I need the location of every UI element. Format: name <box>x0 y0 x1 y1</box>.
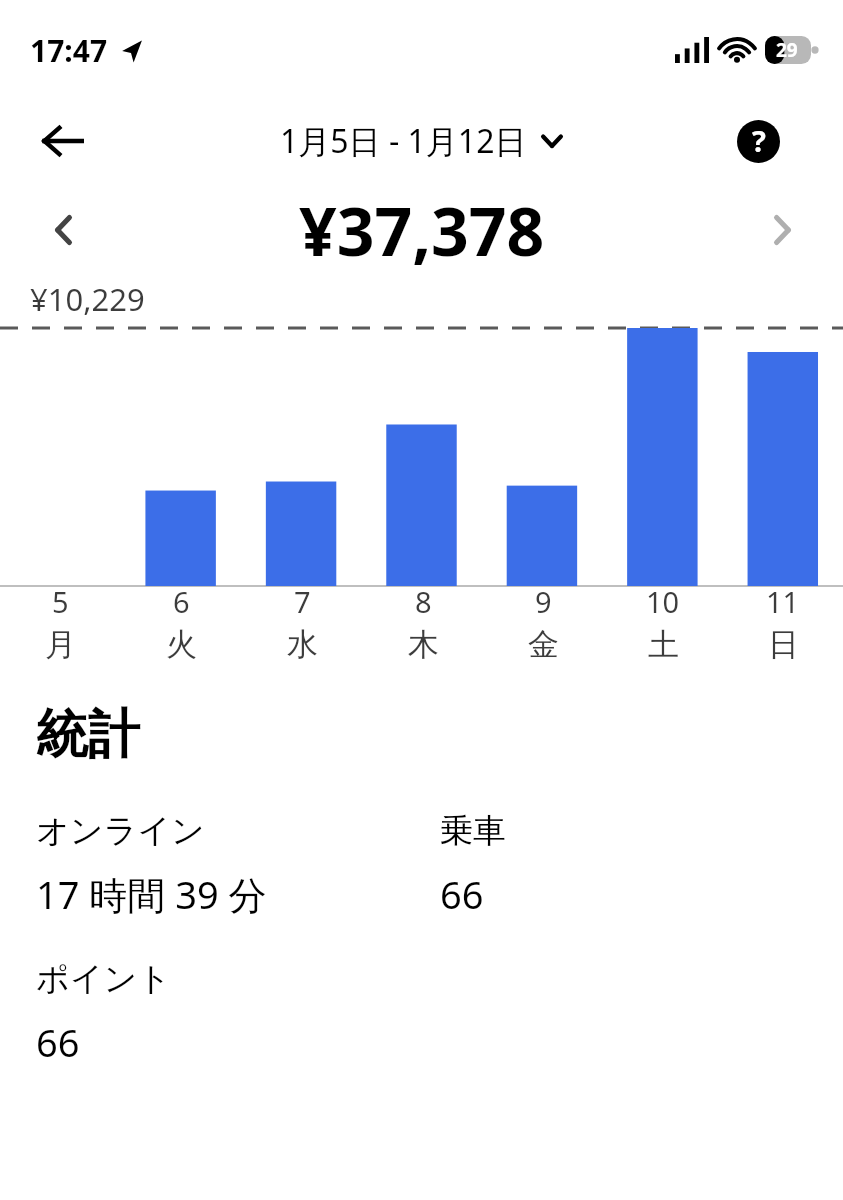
staticText: 月 <box>45 625 76 664</box>
staticText: 火 <box>166 625 197 664</box>
staticText: 日 <box>768 625 799 664</box>
button[interactable]: Previous week <box>40 207 86 253</box>
staticText: 29 <box>776 37 798 63</box>
staticText: ? <box>752 121 766 160</box>
staticText: 水 <box>287 625 318 664</box>
staticText: 6 <box>173 582 190 621</box>
staticText: 17 時間 39 分 <box>36 868 267 920</box>
staticText: 1月5日 - 1月12日 <box>280 119 527 163</box>
button[interactable]: 1月5日 - 1月12日 <box>280 119 563 163</box>
staticText: 11 <box>766 582 800 621</box>
staticText: 10 <box>646 582 680 621</box>
button[interactable]: Back <box>36 115 88 167</box>
staticText: 9 <box>535 582 552 621</box>
button[interactable]: Help <box>735 118 781 164</box>
staticText: 5 <box>52 582 69 621</box>
staticText: 土 <box>648 625 679 664</box>
staticText: 8 <box>415 582 432 621</box>
staticText: 乗車 <box>440 810 506 852</box>
staticText: オンライン <box>36 810 205 852</box>
staticText: ¥10,229 <box>30 278 145 320</box>
staticText: ポイント <box>36 958 172 1000</box>
staticText: 統計 <box>36 702 140 768</box>
button[interactable]: Next week <box>759 207 805 253</box>
staticText: 7 <box>294 582 311 621</box>
staticText: 金 <box>528 625 559 664</box>
staticText: 66 <box>440 868 484 920</box>
staticText: 17:47 <box>30 30 108 71</box>
staticText: 66 <box>36 1016 80 1068</box>
staticText: 木 <box>408 625 439 664</box>
staticText: ¥37,378 <box>299 185 545 275</box>
